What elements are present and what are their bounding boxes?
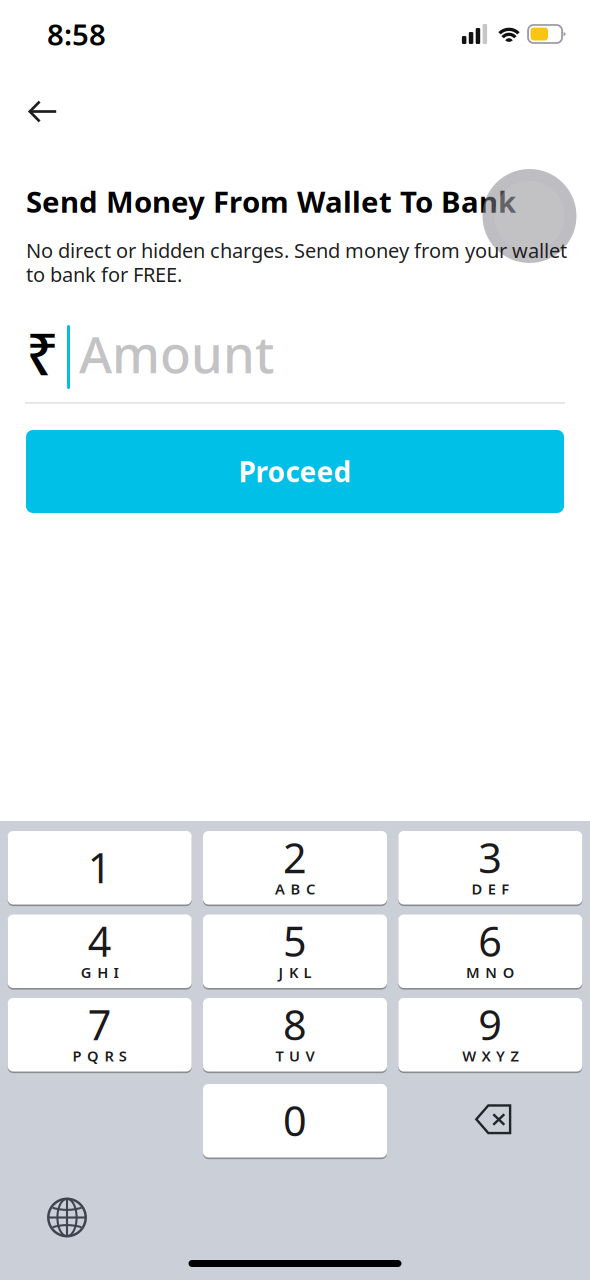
staticText: 7 [88, 997, 112, 1052]
staticText: D [471, 879, 482, 898]
staticText: R [104, 1046, 113, 1065]
button[interactable]: 6 [398, 914, 582, 988]
staticText: Amount [79, 320, 274, 387]
button[interactable]: 8 [203, 998, 387, 1071]
staticText: N [485, 962, 497, 982]
staticText: Z [510, 1046, 518, 1065]
staticText: J [279, 962, 284, 982]
staticText: 1 [88, 840, 112, 895]
button[interactable]: Delete [398, 1084, 582, 1157]
staticText: 4 [88, 913, 112, 968]
staticText: T [276, 1046, 284, 1065]
staticText: ₹ [26, 315, 59, 391]
staticText: A [275, 879, 285, 898]
staticText: 0 [283, 1093, 307, 1148]
staticText: 5 [283, 913, 307, 968]
staticText: L [303, 962, 311, 982]
staticText: W [462, 1046, 476, 1065]
staticText: 8 [283, 997, 307, 1052]
staticText: I [114, 962, 119, 982]
staticText: 2 [283, 830, 307, 885]
button[interactable]: 4 [8, 914, 192, 988]
staticText: 6 [478, 913, 502, 968]
staticText: B [290, 879, 300, 898]
staticText: Q [87, 1046, 99, 1065]
staticText: S [119, 1046, 127, 1065]
staticText: E [488, 879, 496, 898]
staticText: No direct or hidden charges. Send money … [26, 237, 567, 264]
button[interactable]: 3 [398, 831, 582, 904]
button[interactable]: 1 [8, 831, 192, 904]
staticText: M [466, 962, 480, 982]
staticText: G [81, 962, 92, 982]
button[interactable]: Back [15, 86, 71, 137]
button[interactable]: 2 [203, 831, 387, 904]
staticText: 3 [478, 830, 502, 885]
staticText: Y [496, 1046, 505, 1065]
staticText: to bank for FREE. [26, 261, 182, 288]
staticText: Proceed [238, 453, 351, 490]
button[interactable]: 9 [398, 998, 582, 1071]
staticText: F [501, 879, 509, 898]
button[interactable]: 7 [8, 998, 192, 1071]
staticText: K [289, 962, 298, 982]
staticText: C [306, 879, 315, 898]
staticText: V [305, 1046, 314, 1065]
staticText: 9 [478, 997, 502, 1052]
button[interactable]: Proceed [26, 430, 564, 513]
button[interactable]: Switch keyboard [47, 1197, 87, 1237]
staticText: X [482, 1046, 491, 1065]
button[interactable]: 0 [203, 1084, 387, 1157]
staticText: O [503, 962, 515, 982]
staticText: 8:58 [47, 14, 106, 53]
staticText: U [289, 1046, 300, 1065]
staticText: P [73, 1046, 82, 1065]
staticText: H [97, 962, 108, 982]
button[interactable]: 5 [203, 914, 387, 988]
staticText: Send Money From Wallet To Bank [26, 182, 516, 221]
